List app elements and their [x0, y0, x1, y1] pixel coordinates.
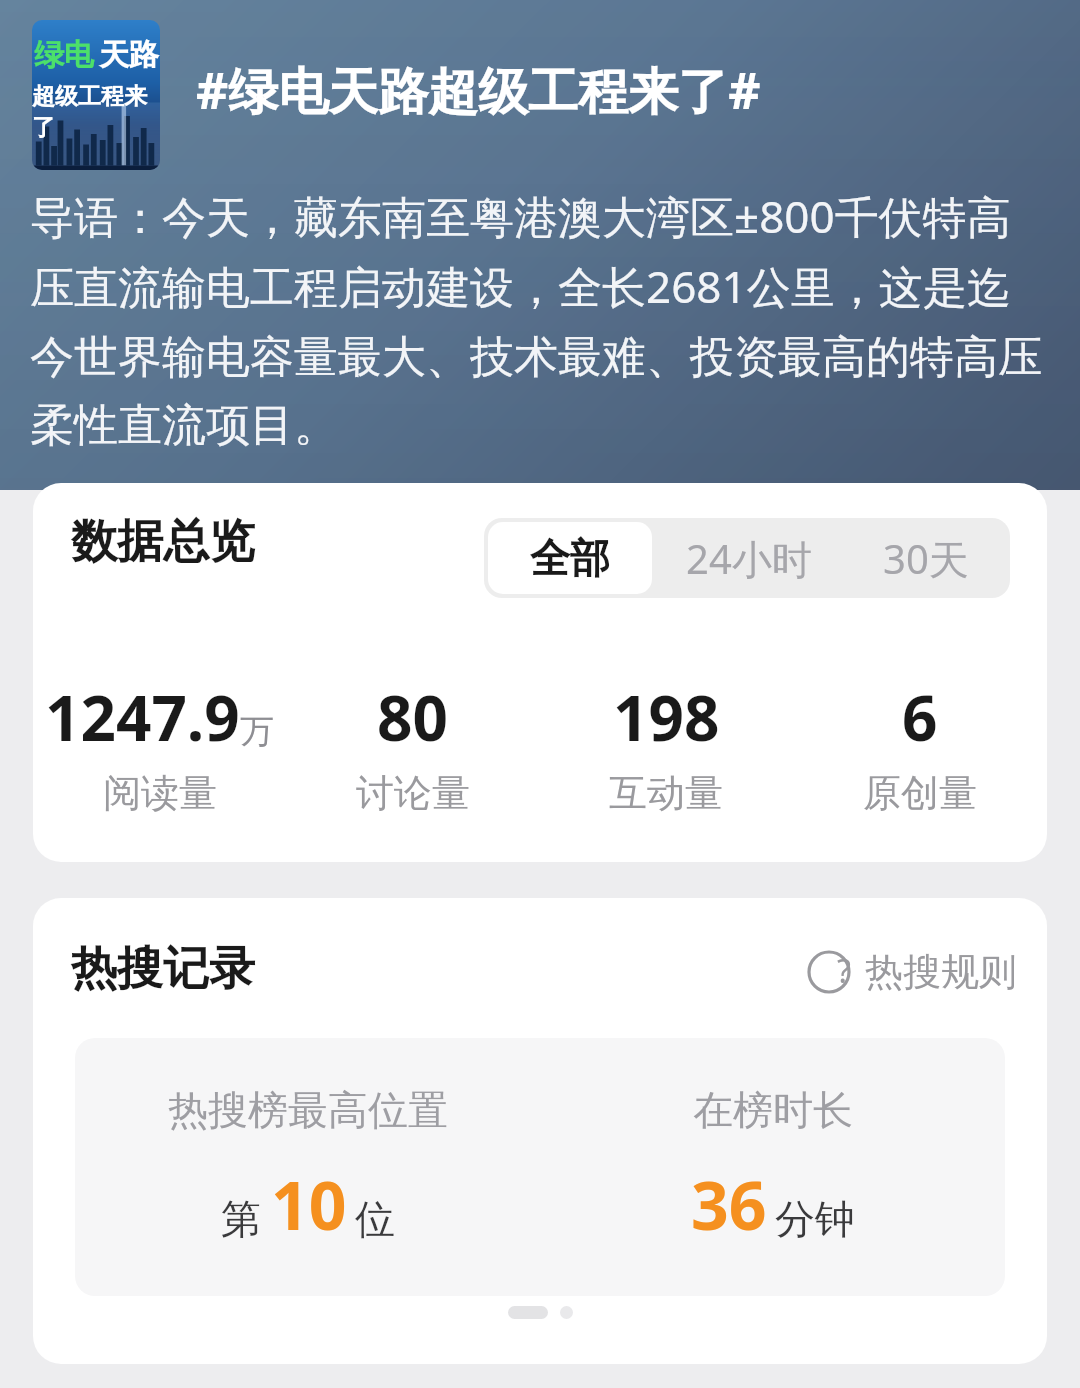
button[interactable]: 30天: [846, 522, 1006, 594]
button[interactable]: #绿电天路超级工程来了#: [196, 56, 761, 124]
staticText: 绿电: [34, 36, 94, 74]
staticText: 分钟: [775, 1194, 855, 1244]
staticText: 36: [691, 1159, 767, 1249]
staticText: 在榜时长: [693, 1085, 853, 1135]
staticText: 万: [240, 710, 274, 753]
staticText: 24小时: [686, 531, 812, 586]
staticText: 80: [377, 675, 448, 759]
staticText: 数据总览: [71, 513, 255, 571]
staticText: 天路: [99, 36, 159, 74]
button[interactable]: 热搜规则: [803, 944, 1021, 1000]
staticText: 阅读量: [103, 769, 217, 817]
staticText: #绿电天路超级工程来了#: [196, 56, 761, 124]
staticText: 互动量: [609, 769, 723, 817]
button[interactable]: 80: [286, 675, 539, 817]
button[interactable]: 热搜榜最高位置: [75, 1038, 540, 1296]
staticText: 讨论量: [356, 769, 470, 817]
staticText: 导语：今天，藏东南至粤港澳大湾区±800千伏特高压直流输电工程启动建设，全长26…: [30, 186, 1052, 453]
staticText: 1247.9: [45, 675, 240, 759]
staticText: 198: [613, 675, 720, 759]
staticText: 6: [902, 675, 938, 759]
staticText: 10: [271, 1159, 347, 1249]
button[interactable]: 全部: [488, 522, 652, 594]
staticText: 位: [355, 1194, 395, 1244]
staticText: 第: [221, 1194, 261, 1244]
button[interactable]: 在榜时长: [540, 1038, 1005, 1296]
button[interactable]: 198: [539, 675, 793, 817]
button[interactable]: 6: [793, 675, 1047, 817]
staticText: 热搜记录: [71, 940, 255, 998]
staticText: 热搜榜最高位置: [168, 1085, 448, 1135]
staticText: 原创量: [863, 769, 977, 817]
staticText: 超级工程来了: [32, 82, 160, 142]
staticText: 30天: [883, 531, 969, 586]
staticText: ?: [822, 949, 866, 993]
staticText: 全部: [530, 533, 610, 583]
button[interactable]: 1247.9: [33, 675, 286, 817]
button[interactable]: 24小时: [660, 522, 838, 594]
button[interactable]: 话题封面图: [32, 20, 160, 170]
staticText: 热搜规则: [865, 948, 1017, 996]
